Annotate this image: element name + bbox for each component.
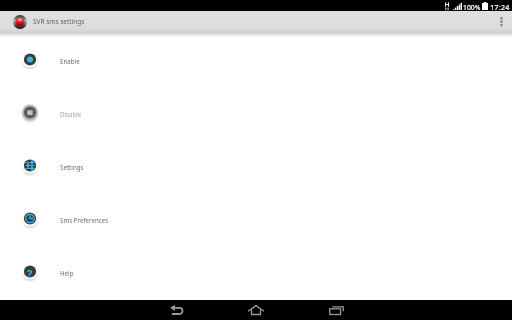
button[interactable]: Disable (0, 86, 512, 139)
staticText: SVR sms settings (33, 17, 85, 26)
staticText: Enable (60, 57, 80, 65)
staticText: Help (60, 269, 74, 277)
button[interactable]: More options (490, 11, 512, 33)
staticText: Sms Preferences (60, 216, 109, 224)
button[interactable]: Sms Preferences (0, 192, 512, 245)
staticText: Disable (60, 110, 82, 118)
button[interactable]: Recent apps (310, 300, 362, 320)
staticText: Settings (60, 163, 84, 171)
button[interactable]: Enable (0, 33, 512, 86)
button[interactable]: ? (0, 245, 512, 298)
button[interactable]: Home (230, 300, 282, 320)
button[interactable]: Settings (0, 139, 512, 192)
staticText: 100% (463, 3, 481, 12)
button[interactable]: Back (150, 300, 202, 320)
staticText: 17:24 (490, 2, 510, 12)
staticText: ? (27, 266, 33, 281)
